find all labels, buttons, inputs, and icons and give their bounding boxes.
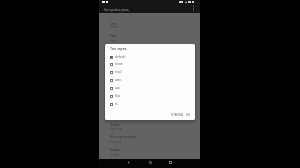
staticText: Красный	[110, 140, 122, 144]
staticText: aac	[115, 86, 121, 90]
button[interactable]: ОК	[184, 111, 193, 118]
button[interactable]: wav	[105, 76, 195, 84]
staticText: none	[115, 62, 123, 66]
button[interactable]: Звук	[99, 34, 200, 46]
staticText: wav	[115, 78, 121, 82]
button[interactable]: Home	[146, 158, 155, 167]
staticText: Не вкл	[110, 25, 119, 29]
button[interactable]: aac	[105, 84, 195, 92]
staticText: Не вкл	[110, 153, 119, 157]
staticText: Свет	[110, 22, 117, 26]
button[interactable]: Back	[124, 158, 133, 167]
button[interactable]: default	[105, 53, 195, 61]
staticText: Настройка увед.	[104, 8, 130, 12]
button[interactable]: Вибро	[99, 148, 200, 160]
button[interactable]: ts	[105, 100, 195, 108]
button[interactable]: Recents	[166, 158, 175, 167]
staticText: ОК	[186, 113, 191, 117]
staticText: ts	[115, 102, 118, 106]
staticText: Красный	[110, 127, 122, 131]
staticText: default	[115, 55, 126, 59]
button[interactable]: ОТМЕНА	[169, 111, 186, 118]
staticText: ОТМЕНА	[171, 113, 184, 117]
button[interactable]: Вибро	[99, 123, 200, 135]
staticText: Звук	[110, 34, 117, 38]
staticText: Вибро	[110, 123, 120, 127]
staticText: Тихо	[110, 39, 116, 43]
staticText: Мигание индикат	[110, 135, 137, 139]
staticText: flac	[115, 94, 121, 98]
button[interactable]: none	[105, 60, 195, 68]
button[interactable]: mp3	[105, 68, 195, 76]
button[interactable]: Мигание индикат	[99, 135, 200, 147]
staticText: Тип звука	[110, 46, 127, 51]
staticText: mp3	[115, 70, 122, 74]
button[interactable]: More options	[189, 4, 197, 12]
button[interactable]: flac	[105, 92, 195, 100]
staticText: Вибро	[110, 148, 120, 152]
